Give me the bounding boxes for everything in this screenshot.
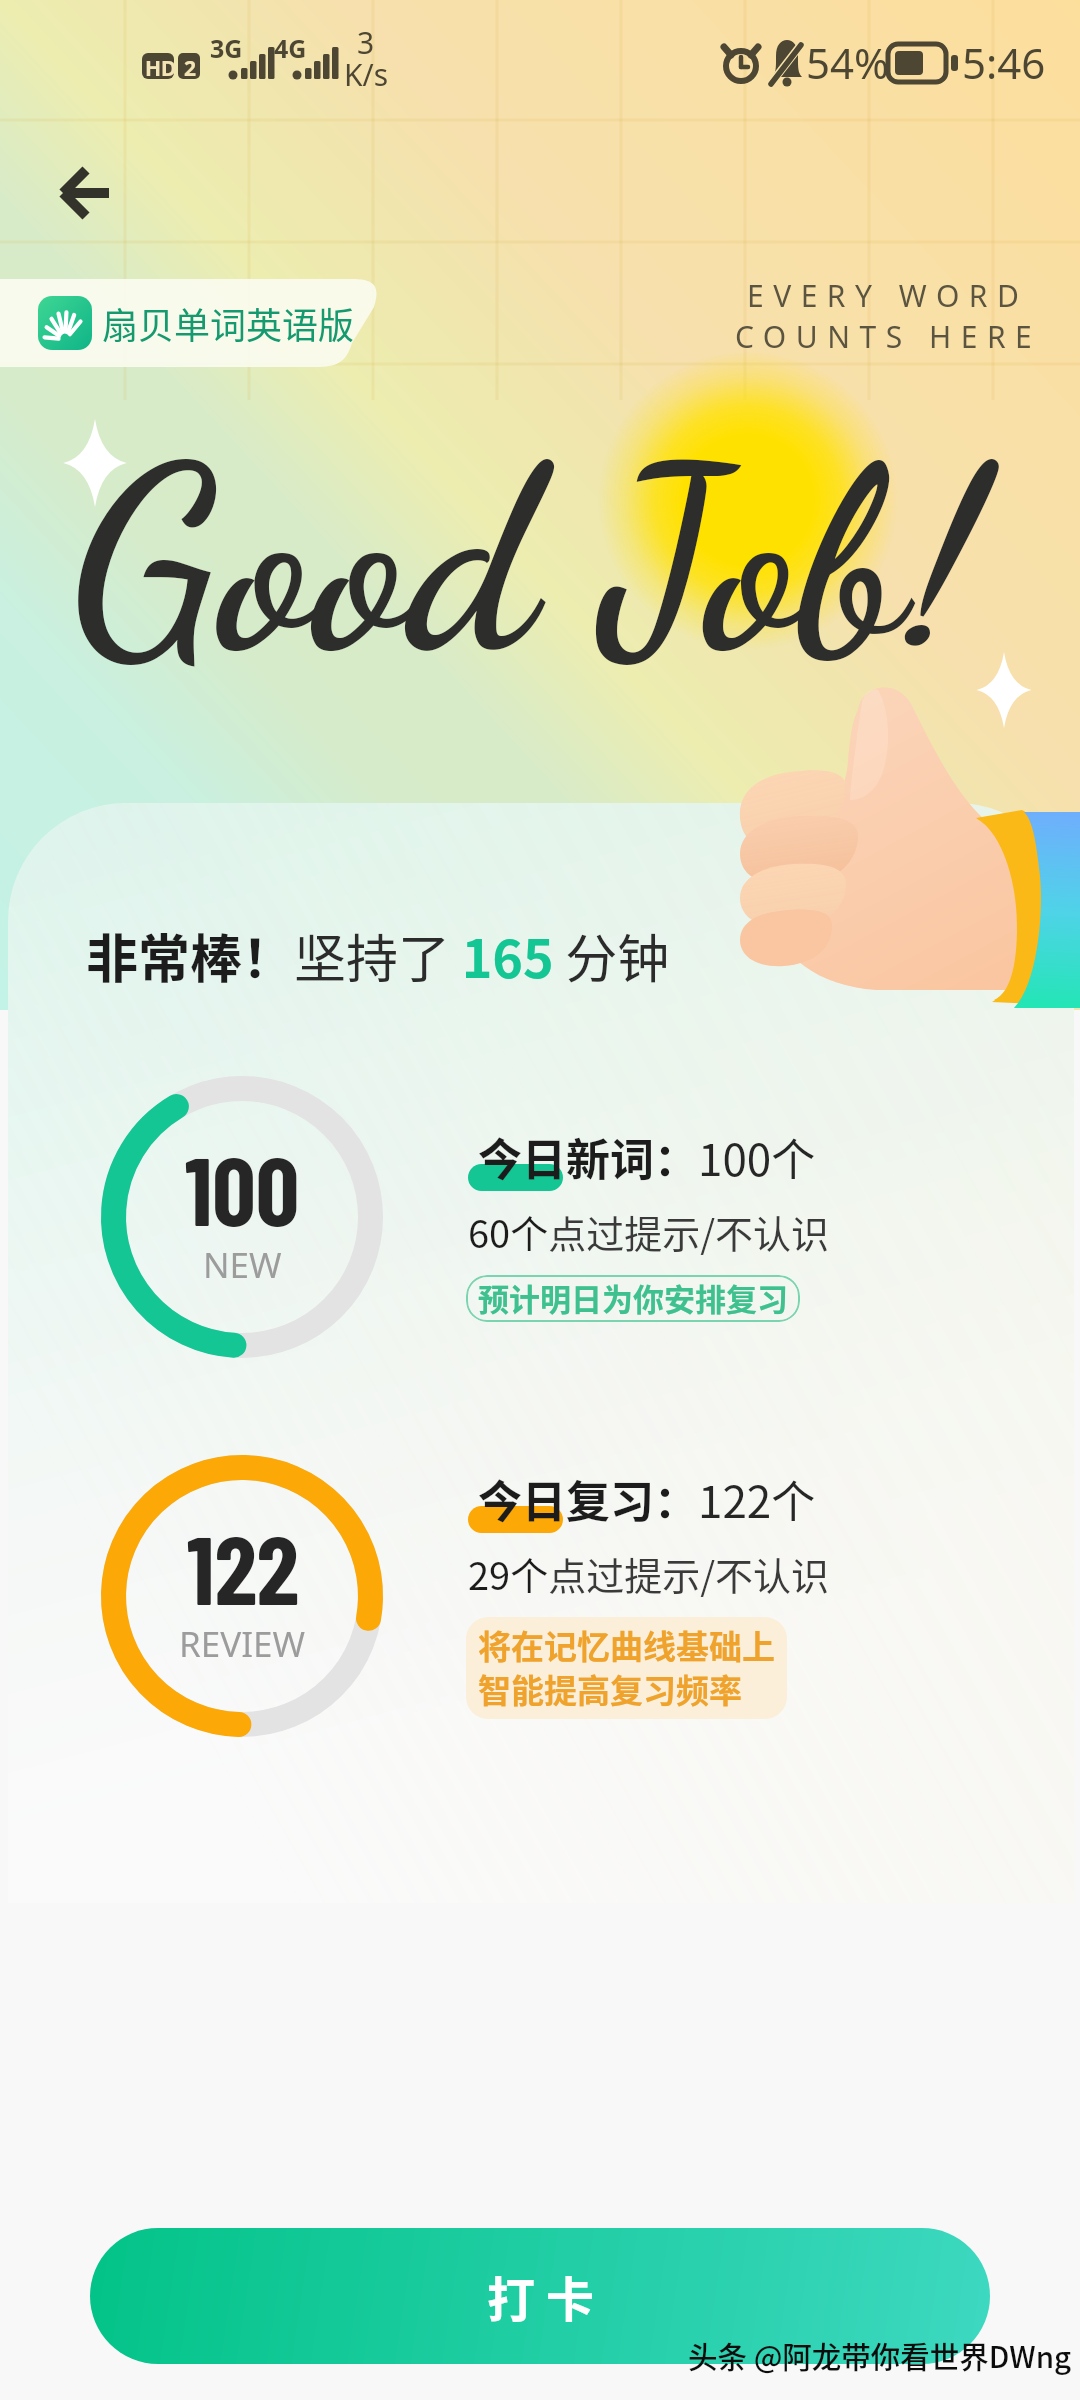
staticText: 3G <box>210 31 243 65</box>
staticText: 预计明日为你安排复习 <box>478 1275 788 1320</box>
staticText: 打 卡 <box>487 2261 594 2331</box>
staticText: 29个点过提示/不认识 <box>468 1546 830 1601</box>
staticText: 2 <box>184 54 197 83</box>
staticText: EVERY WORD <box>747 275 1029 316</box>
staticText: 122 <box>187 1509 299 1624</box>
staticText: 100 <box>185 1130 300 1245</box>
staticText: 头条 @阿龙带你看世界DWng <box>688 2334 1072 2377</box>
staticText: 5:46 <box>962 34 1046 91</box>
staticText: Good Job! <box>70 408 981 714</box>
staticText: K/s <box>344 54 389 95</box>
staticText: 60个点过提示/不认识 <box>468 1204 830 1259</box>
staticText: 将在记忆曲线基础上 智能提高复习频率 <box>478 1621 775 1713</box>
staticText: HD <box>145 54 177 83</box>
staticText: 3 <box>357 22 375 63</box>
staticText: 54% <box>806 34 889 91</box>
staticText: NEW <box>203 1241 282 1289</box>
staticText: 今日新词：100个 <box>478 1125 816 1189</box>
button[interactable]: 打 卡 <box>90 2228 990 2364</box>
staticText: 非常棒！坚持了 165 分钟 <box>86 918 670 993</box>
button[interactable]: Back <box>38 146 132 240</box>
staticText: 扇贝单词英语版 <box>102 297 355 349</box>
staticText: 今日复习：122个 <box>478 1467 816 1531</box>
staticText: 4G <box>274 31 307 65</box>
button[interactable]: 扇贝单词英语版 <box>0 277 382 369</box>
staticText: REVIEW <box>179 1620 306 1668</box>
staticText: COUNTS HERE <box>735 316 1042 357</box>
